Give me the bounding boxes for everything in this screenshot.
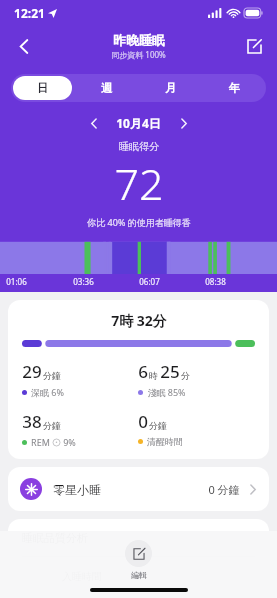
staticText: 零星小睡: [53, 482, 101, 497]
staticText: 38: [22, 410, 42, 433]
staticText: 月: [165, 81, 176, 95]
staticText: 你比 40% 的使用者睡得香: [87, 216, 191, 228]
staticText: 分: [181, 370, 190, 381]
staticText: 6: [138, 360, 148, 383]
staticText: 72: [114, 154, 164, 213]
staticText: 7時 32分: [111, 311, 167, 330]
staticText: 01:06: [6, 276, 27, 287]
staticText: 時: [149, 370, 158, 381]
staticText: 分鐘: [43, 420, 61, 431]
staticText: 同步資料 100%: [111, 49, 166, 60]
staticText: 編輯: [131, 570, 147, 580]
button[interactable]: 7時 32分: [8, 300, 269, 459]
staticText: 分鐘: [149, 420, 167, 431]
button[interactable]: 年: [204, 76, 264, 100]
button[interactable]: 月: [140, 76, 200, 100]
staticText: 9%: [63, 436, 76, 448]
staticText: 10月4日: [116, 115, 161, 131]
button[interactable]: Back: [6, 28, 42, 64]
staticText: 年: [229, 81, 240, 95]
button[interactable]: 週: [76, 76, 136, 100]
staticText: 29: [22, 360, 42, 383]
staticText: REM: [31, 436, 50, 448]
staticText: 睡眠得分: [119, 140, 159, 153]
staticText: 週: [101, 81, 112, 95]
staticText: 淺眠 85%: [147, 386, 186, 398]
staticText: 日: [37, 81, 48, 95]
staticText: 25: [160, 360, 180, 383]
button[interactable]: 日: [13, 76, 72, 100]
staticText: 0: [138, 410, 148, 433]
staticText: 分鐘: [43, 370, 61, 381]
staticText: 深眠 6%: [31, 386, 64, 398]
button[interactable]: Previous day: [82, 111, 106, 135]
staticText: 06:07: [139, 276, 160, 287]
button[interactable]: Edit: [115, 538, 162, 582]
button[interactable]: Share: [237, 29, 271, 63]
staticText: 0 分鐘: [208, 482, 240, 497]
staticText: 清醒時間: [147, 436, 183, 447]
button[interactable]: Next day: [171, 111, 195, 135]
button[interactable]: 睡眠品質分析: [8, 519, 269, 598]
staticText: 03:36: [73, 276, 94, 287]
staticText: 08:38: [205, 276, 226, 287]
staticText: 昨晚睡眠: [113, 32, 165, 48]
button[interactable]: 零星小睡: [8, 467, 269, 511]
staticText: 12:21: [14, 5, 45, 21]
